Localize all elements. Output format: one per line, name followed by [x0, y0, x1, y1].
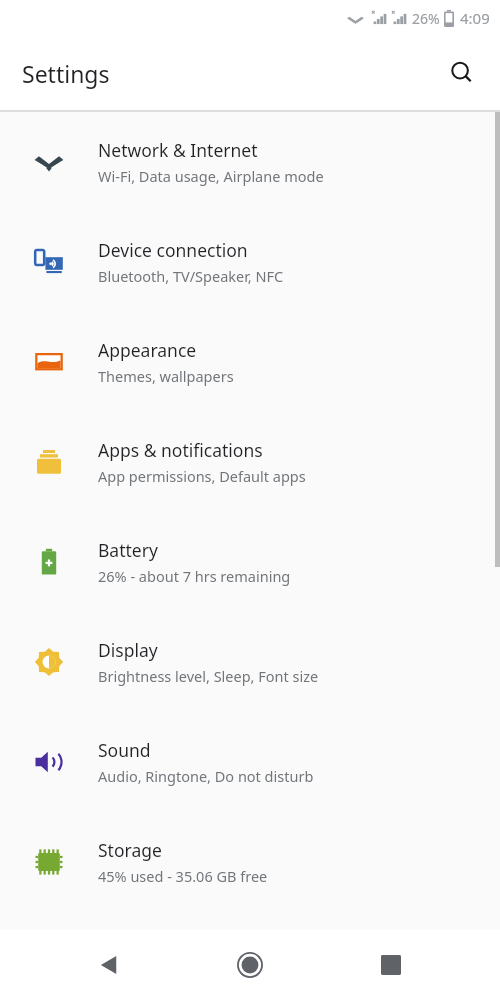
- staticText: Apps & notifications: [98, 438, 263, 462]
- staticText: Wi-Fi, Data usage, Airplane mode: [98, 166, 324, 186]
- button[interactable]: Recent apps: [360, 934, 422, 996]
- button[interactable]: Storage: [0, 812, 500, 912]
- staticText: Device connection: [98, 238, 248, 262]
- button[interactable]: Device connection: [0, 212, 500, 312]
- staticText: App permissions, Default apps: [98, 466, 306, 486]
- button[interactable]: Battery: [0, 512, 500, 612]
- button[interactable]: Appearance: [0, 312, 500, 412]
- button[interactable]: Sound: [0, 712, 500, 812]
- button[interactable]: Search: [438, 49, 486, 97]
- staticText: Bluetooth, TV/Speaker, NFC: [98, 266, 284, 286]
- button[interactable]: Home: [219, 934, 281, 996]
- staticText: 4:09: [460, 8, 490, 28]
- staticText: Storage: [98, 838, 162, 862]
- staticText: 45% used - 35.06 GB free: [98, 866, 268, 886]
- button[interactable]: Apps & notifications: [0, 412, 500, 512]
- staticText: Battery: [98, 538, 158, 562]
- staticText: Appearance: [98, 338, 197, 362]
- button[interactable]: Network & Internet: [0, 112, 500, 212]
- staticText: Audio, Ringtone, Do not disturb: [98, 766, 314, 786]
- staticText: Settings: [22, 58, 110, 89]
- staticText: Network & Internet: [98, 138, 258, 162]
- button[interactable]: Display: [0, 612, 500, 712]
- button[interactable]: Back: [79, 934, 141, 996]
- staticText: Display: [98, 638, 158, 662]
- staticText: 26%: [412, 9, 440, 28]
- staticText: 26% - about 7 hrs remaining: [98, 566, 291, 586]
- staticText: Themes, wallpapers: [98, 366, 234, 386]
- staticText: Brightness level, Sleep, Font size: [98, 666, 319, 686]
- staticText: Sound: [98, 738, 151, 762]
